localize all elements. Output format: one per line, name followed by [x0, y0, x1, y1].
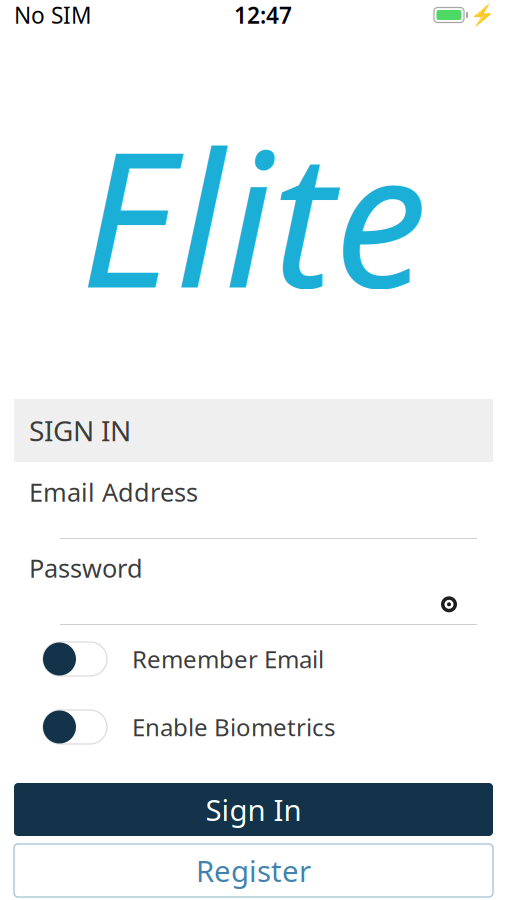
- staticText: Elite: [80, 91, 427, 339]
- staticText: Sign In: [205, 790, 301, 829]
- staticText: Password: [29, 551, 143, 585]
- button[interactable]: Remember Email: [29, 625, 477, 693]
- staticText: Remember Email: [132, 643, 324, 675]
- staticText: No SIM: [14, 0, 92, 30]
- staticText: 12:47: [234, 0, 292, 30]
- button[interactable]: Enable Biometrics: [29, 693, 477, 761]
- button[interactable]: Sign In: [14, 783, 493, 836]
- staticText: ⚡: [470, 4, 495, 26]
- staticText: Register: [196, 851, 311, 890]
- button[interactable]: Register: [14, 844, 493, 897]
- staticText: Email Address: [29, 475, 198, 509]
- staticText: Enable Biometrics: [132, 711, 335, 743]
- staticText: SIGN IN: [29, 412, 131, 449]
- button[interactable]: Show password: [431, 590, 467, 618]
